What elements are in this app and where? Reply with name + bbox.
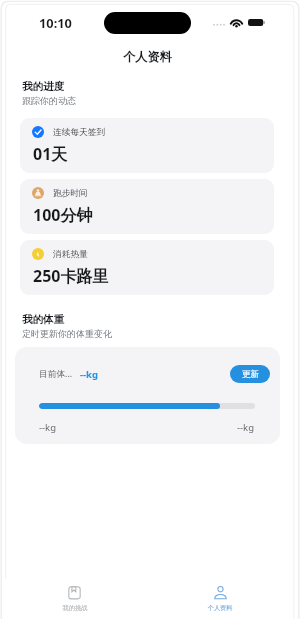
staticText: 跟踪你的动态 bbox=[22, 95, 76, 106]
staticText: --kg bbox=[80, 368, 98, 381]
staticText: 我的进度 bbox=[22, 80, 64, 93]
button[interactable]: 个人资料 bbox=[147, 579, 293, 619]
button[interactable]: 我的挑战 bbox=[2, 579, 147, 619]
staticText: 消耗热量 bbox=[53, 249, 88, 260]
button[interactable]: 消耗热量 bbox=[20, 240, 274, 295]
staticText: 100分钟 bbox=[33, 204, 93, 226]
staticText: 个人资料 bbox=[207, 604, 233, 612]
staticText: 目前体... bbox=[39, 368, 73, 380]
staticText: 定时更新你的体重变化 bbox=[22, 328, 112, 339]
staticText: 我的挑战 bbox=[62, 604, 88, 612]
staticText: 01天 bbox=[33, 143, 68, 165]
staticText: 跑步时间 bbox=[53, 188, 88, 199]
staticText: 10:10 bbox=[39, 14, 72, 31]
button[interactable]: 更新 bbox=[230, 365, 270, 383]
staticText: 连续每天签到 bbox=[53, 127, 106, 138]
staticText: 250卡路里 bbox=[33, 265, 109, 287]
staticText: 我的体重 bbox=[22, 313, 64, 326]
staticText: --kg bbox=[237, 421, 255, 434]
staticText: 更新 bbox=[242, 369, 259, 380]
button[interactable]: 跑步时间 bbox=[20, 179, 274, 234]
staticText: 个人资料 bbox=[123, 49, 172, 64]
button[interactable]: 连续每天签到 bbox=[20, 118, 274, 173]
staticText: --kg bbox=[39, 421, 57, 434]
